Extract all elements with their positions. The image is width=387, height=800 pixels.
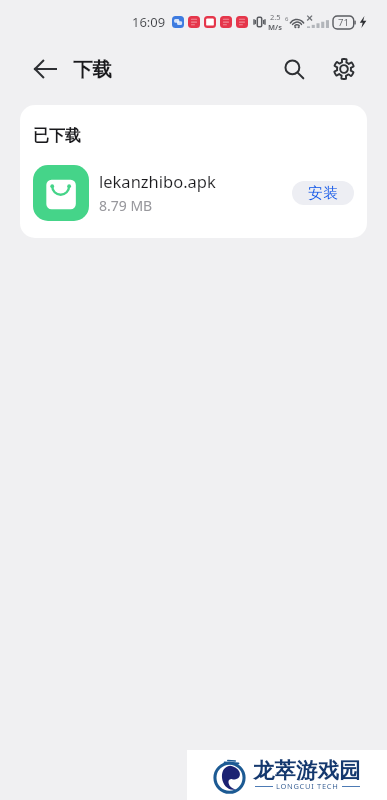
button[interactable]: Settings xyxy=(324,49,364,89)
staticText: M/s xyxy=(268,22,282,32)
button[interactable]: Back xyxy=(24,48,66,90)
staticText: 龙萃游戏园 xyxy=(253,757,361,784)
staticText: 16:09 xyxy=(132,13,166,31)
staticText: 已下载 xyxy=(33,126,81,146)
staticText: 下载 xyxy=(73,57,112,82)
staticText: 8.79 MB xyxy=(99,196,153,215)
button[interactable]: lekanzhibo.apk xyxy=(20,155,367,230)
staticText: 安装 xyxy=(308,184,338,203)
button[interactable]: Search xyxy=(274,49,314,89)
staticText: 71 xyxy=(338,16,349,29)
staticText: lekanzhibo.apk xyxy=(99,170,216,192)
staticText: 6 xyxy=(285,15,289,23)
staticText: 2.5 xyxy=(270,12,281,22)
button[interactable]: 安装 xyxy=(292,181,354,205)
staticText: LONGCUI TECH xyxy=(276,781,339,791)
